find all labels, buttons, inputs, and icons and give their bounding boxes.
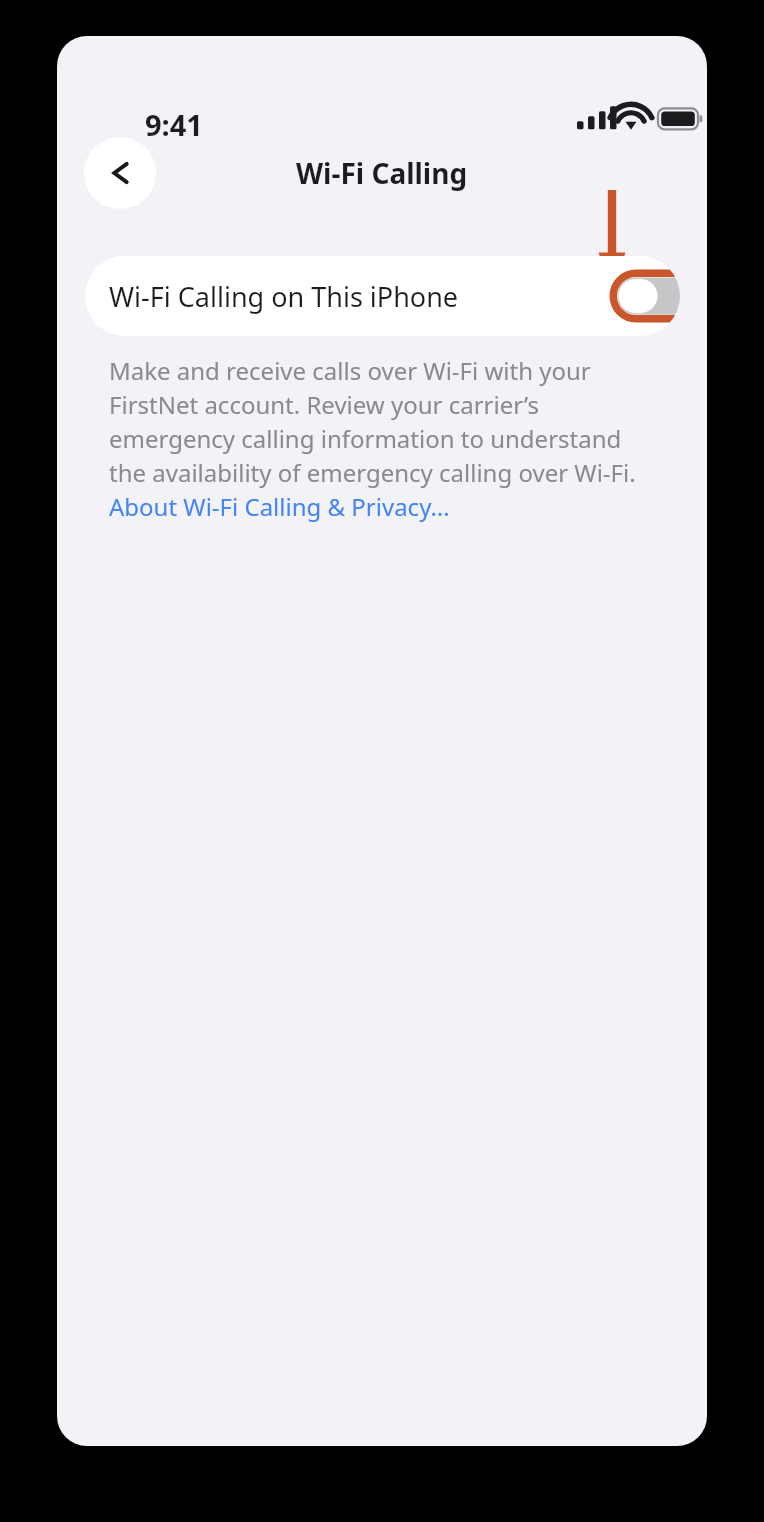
staticText: 9:41 [145,105,203,144]
staticText: Wi-Fi Calling [296,154,468,192]
button[interactable]: Wi-Fi Calling on This iPhone [85,256,680,336]
button[interactable]: Back [84,137,156,209]
staticText: Make and receive calls over Wi-Fi with y… [109,354,649,523]
staticText: Wi-Fi Calling on This iPhone [109,278,459,315]
other: Wi-Fi Calling toggle [608,268,680,324]
